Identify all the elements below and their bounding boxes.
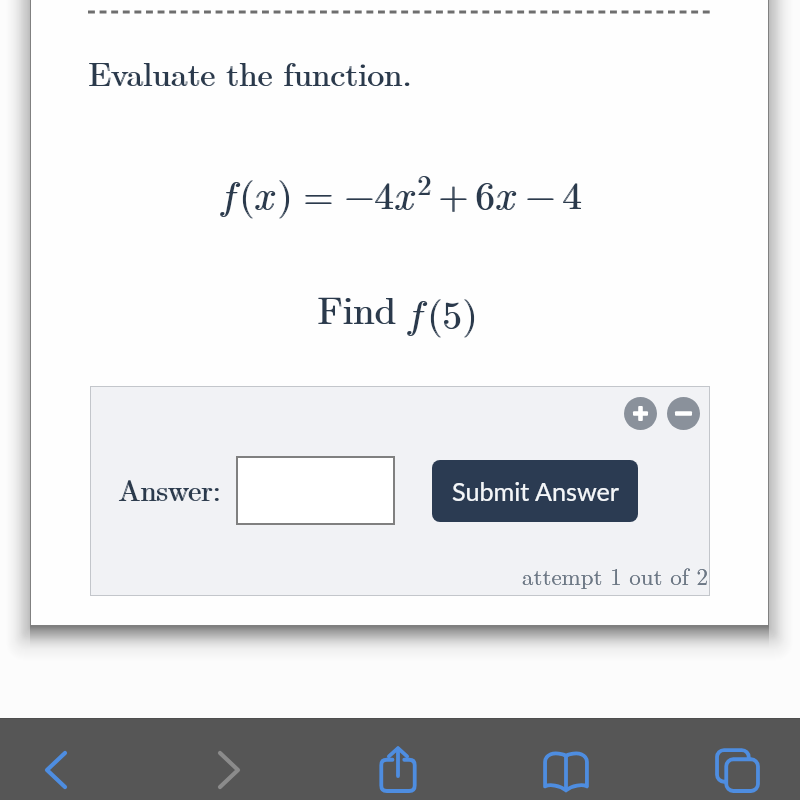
staticText: 𝑥	[394, 178, 417, 217]
button[interactable]: Share	[376, 747, 420, 791]
staticText: −	[525, 178, 555, 217]
staticText: −	[344, 178, 374, 217]
staticText: (	[427, 297, 442, 336]
staticText: 𝑥	[495, 178, 518, 217]
staticText: 6	[476, 178, 496, 217]
staticText: =	[304, 178, 334, 217]
staticText: 𝑥	[496, 178, 519, 217]
staticText: (	[428, 297, 443, 336]
staticText: −	[526, 178, 556, 217]
staticText: 4	[375, 178, 395, 217]
staticText: 𝑥	[395, 178, 418, 217]
button[interactable]: Back	[34, 748, 78, 792]
staticText: Evaluate the function.	[88, 49, 412, 96]
button[interactable]: Submit Answer	[432, 460, 638, 522]
staticText: Evaluate the function.	[89, 49, 413, 96]
button[interactable]: Answer input field	[236, 456, 395, 525]
staticText: attempt 1 out of 2	[522, 559, 708, 592]
staticText: )	[462, 297, 477, 336]
staticText: 6	[475, 178, 495, 217]
staticText: 𝑓	[405, 297, 424, 336]
staticText: =	[303, 178, 333, 217]
staticText: Find	[318, 281, 397, 336]
button[interactable]: Forward	[207, 748, 251, 792]
staticText: 𝑓	[219, 178, 238, 217]
staticText: 𝑓	[218, 178, 237, 217]
button[interactable]: Zoom out	[667, 397, 700, 430]
button[interactable]: Tabs	[714, 747, 760, 793]
staticText: 2	[417, 173, 431, 201]
staticText: 𝑓	[406, 297, 425, 336]
staticText: +	[439, 178, 469, 217]
button[interactable]: Bookmarks	[543, 749, 589, 795]
staticText: Answer:	[118, 468, 221, 509]
staticText: 𝑥	[255, 178, 278, 217]
staticText: )	[463, 297, 478, 336]
staticText: 𝑥	[254, 178, 277, 217]
staticText: 2	[418, 173, 432, 201]
staticText: −	[345, 178, 375, 217]
staticText: (	[239, 178, 254, 217]
staticText: Submit Answer	[452, 476, 619, 506]
staticText: 4	[562, 178, 582, 217]
staticText: 5	[443, 297, 463, 336]
staticText: attempt 1 out of 2	[522, 559, 708, 592]
staticText: 5	[442, 297, 462, 336]
staticText: Find	[317, 281, 396, 336]
staticText: 4	[563, 178, 583, 217]
button[interactable]: Zoom in	[624, 397, 657, 430]
staticText: )	[278, 178, 293, 217]
staticText: 4	[374, 178, 394, 217]
staticText: )	[277, 178, 292, 217]
staticText: +	[438, 178, 468, 217]
staticText: (	[240, 178, 255, 217]
staticText: Answer:	[119, 468, 222, 509]
